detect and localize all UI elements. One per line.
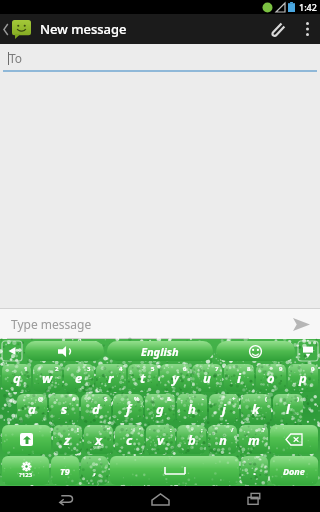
staticText: 8	[247, 365, 251, 373]
button[interactable]: x	[84, 425, 113, 454]
button[interactable]: c	[115, 425, 144, 454]
staticText: English	[141, 344, 179, 359]
staticText: f	[126, 400, 131, 418]
button[interactable]: b	[177, 425, 206, 454]
staticText: ,	[93, 463, 97, 478]
staticText: 3	[87, 365, 91, 373]
button[interactable]: Type message	[0, 309, 282, 339]
button[interactable]: q	[2, 364, 31, 392]
staticText: m	[248, 431, 260, 449]
staticText: 9	[279, 365, 283, 373]
staticText: 4	[119, 365, 123, 373]
staticText: s	[61, 400, 68, 418]
staticText: 6	[183, 365, 187, 373]
staticText: 0	[311, 365, 315, 373]
staticText: i	[237, 369, 241, 387]
button[interactable]: Back	[35, 486, 95, 512]
button[interactable]: Attach	[260, 14, 294, 44]
button[interactable]: l	[273, 394, 303, 423]
staticText: q	[13, 369, 21, 387]
staticText: 7	[215, 365, 219, 373]
staticText: -	[202, 395, 204, 403]
button[interactable]: i	[224, 364, 254, 392]
button[interactable]: z	[53, 425, 82, 454]
staticText: @	[38, 395, 44, 403]
staticText: r	[108, 369, 114, 387]
staticText: &	[167, 395, 172, 403]
button[interactable]: t	[128, 364, 158, 392]
button[interactable]: Done	[270, 456, 318, 485]
button[interactable]	[110, 456, 239, 485]
button[interactable]: h	[177, 394, 207, 423]
button[interactable]: Theme	[2, 341, 22, 361]
staticText: (	[265, 395, 268, 403]
button[interactable]: More options	[294, 14, 320, 44]
staticText: z	[64, 431, 71, 449]
staticText: 5	[151, 365, 155, 373]
button[interactable]: .	[241, 456, 268, 485]
button[interactable]: s	[49, 394, 79, 423]
staticText: a	[28, 400, 36, 418]
staticText: w	[42, 369, 53, 387]
button[interactable]: Voice input	[25, 341, 104, 361]
button[interactable]: e	[64, 364, 94, 392]
button[interactable]: k	[241, 394, 271, 423]
button[interactable]: Send	[282, 309, 320, 339]
button[interactable]: n	[208, 425, 237, 454]
staticText: g	[156, 400, 164, 418]
staticText: ?123	[19, 471, 33, 479]
staticText: /	[231, 426, 234, 434]
button[interactable]: r	[96, 364, 126, 392]
staticText: v	[157, 431, 164, 449]
staticText: #	[72, 395, 76, 403]
staticText: j	[222, 400, 226, 418]
other: Shift	[2, 425, 51, 454]
staticText: '	[139, 426, 141, 434]
staticText: :	[170, 426, 172, 434]
button[interactable]: Recent apps	[225, 486, 285, 512]
button[interactable]: j	[209, 394, 239, 423]
other: Settings and symbols	[2, 456, 49, 485]
other: Backspace	[270, 425, 318, 454]
button[interactable]: u	[192, 364, 222, 392]
button[interactable]	[2, 425, 51, 454]
staticText: l	[286, 400, 290, 418]
button[interactable]: f	[113, 394, 143, 423]
staticText: d	[92, 400, 100, 418]
staticText: "	[107, 426, 110, 434]
staticText: u	[203, 369, 211, 387]
button[interactable]: y	[160, 364, 190, 392]
button[interactable]: p	[288, 364, 318, 392]
button[interactable]: m	[239, 425, 268, 454]
button[interactable]: English	[107, 341, 213, 361]
button[interactable]: g	[145, 394, 175, 423]
button[interactable]: Hide keyboard	[298, 341, 318, 361]
button[interactable]: d	[81, 394, 111, 423]
staticText: t	[140, 369, 146, 387]
staticText: $	[104, 395, 108, 403]
button[interactable]: T9	[51, 456, 79, 485]
button[interactable]: ?123	[2, 456, 49, 485]
button[interactable]: ,	[81, 456, 108, 485]
staticText: b	[188, 431, 196, 449]
staticText: New message	[40, 20, 127, 38]
button[interactable]: o	[256, 364, 286, 392]
staticText: 2	[55, 365, 59, 373]
button[interactable]: Emoji	[216, 341, 295, 361]
staticText: h	[188, 400, 196, 418]
staticText: k	[252, 400, 260, 418]
button[interactable]: Home	[130, 486, 190, 512]
button[interactable]: Navigate up	[0, 14, 35, 44]
button[interactable]: w	[33, 364, 62, 392]
staticText: Type message	[11, 316, 92, 332]
staticText: ;	[201, 426, 203, 434]
staticText: )	[297, 395, 300, 403]
button[interactable]	[270, 425, 318, 454]
staticText: .	[253, 463, 257, 478]
staticText: To	[9, 50, 23, 66]
staticText: p	[299, 369, 307, 387]
button[interactable]: a	[17, 394, 47, 423]
staticText: e	[75, 369, 83, 387]
staticText: c	[126, 431, 133, 449]
button[interactable]: v	[146, 425, 175, 454]
